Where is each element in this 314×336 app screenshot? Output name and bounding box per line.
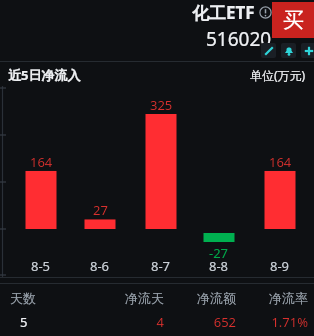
button[interactable]: Info xyxy=(259,6,272,19)
staticText: 天数 xyxy=(10,290,92,306)
staticText: 单位(万元) xyxy=(250,67,306,83)
button[interactable]: 买 xyxy=(272,2,314,38)
staticText: 1.71% xyxy=(236,313,308,331)
staticText: 净流额 xyxy=(164,290,236,306)
staticText: 516020 xyxy=(206,26,272,52)
staticText: 5 xyxy=(20,313,28,331)
staticText: 164 xyxy=(269,153,292,171)
button[interactable]: Edit xyxy=(261,43,276,58)
staticText: 8-6 xyxy=(90,257,110,275)
staticText: 近5日净流入 xyxy=(8,66,81,84)
staticText: 8-8 xyxy=(209,257,229,275)
staticText: 净流天 xyxy=(92,290,164,306)
staticText: 净流率 xyxy=(236,290,308,306)
staticText: 8-9 xyxy=(270,257,290,275)
staticText: 652 xyxy=(164,313,236,331)
staticText: 164 xyxy=(30,153,53,171)
staticText: 8-5 xyxy=(31,257,51,275)
staticText: 27 xyxy=(93,201,108,219)
staticText: -27 xyxy=(209,244,229,262)
staticText: 4 xyxy=(92,313,164,331)
staticText: 化工ETF xyxy=(192,1,255,24)
button[interactable]: Alerts xyxy=(281,43,296,58)
staticText: 325 xyxy=(150,96,173,114)
staticText: 8-7 xyxy=(151,257,171,275)
button[interactable]: Add xyxy=(301,43,314,58)
staticText: 买 xyxy=(283,7,304,33)
